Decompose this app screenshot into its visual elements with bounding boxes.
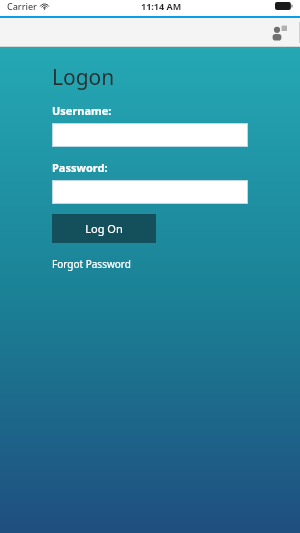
staticText: Logon (52, 63, 115, 92)
button[interactable]: Forgot Password (52, 257, 131, 271)
button[interactable] (52, 180, 248, 204)
staticText: Carrier (7, 0, 37, 12)
button[interactable]: Log On (52, 214, 156, 243)
button[interactable]: Account (258, 18, 300, 47)
staticText: Log On (85, 221, 123, 236)
staticText: Username: (52, 103, 112, 118)
button[interactable] (52, 123, 248, 147)
staticText: Password: (52, 160, 108, 175)
staticText: 11:14 AM (141, 0, 182, 12)
staticText: Forgot Password (52, 257, 131, 271)
